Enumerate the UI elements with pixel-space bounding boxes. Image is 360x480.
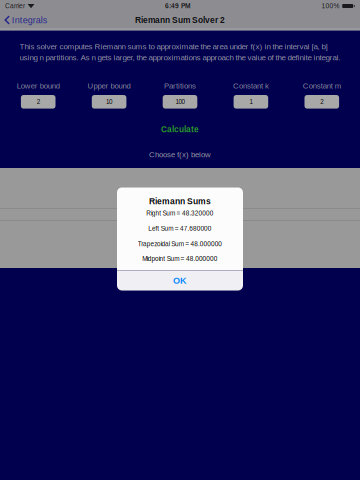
button[interactable]: Calculate	[140, 123, 220, 135]
staticText: 1	[249, 98, 252, 105]
staticText: This solver computes Riemann sums to app…	[19, 42, 340, 62]
staticText: Choose f(x) below	[149, 150, 211, 159]
button[interactable]: OK	[117, 270, 243, 291]
button[interactable]: 2	[304, 95, 339, 109]
staticText: Lower bound	[17, 81, 60, 90]
staticText: OK	[173, 275, 187, 285]
staticText: Integrals	[12, 15, 48, 25]
staticText: Constant k	[233, 81, 269, 90]
staticText: Partitions	[164, 81, 196, 90]
button[interactable]: 100	[163, 95, 197, 109]
staticText: 2	[37, 98, 40, 105]
staticText: Carrier	[5, 2, 25, 10]
staticText: Upper bound	[88, 81, 131, 90]
staticText: Left Sum = 47.680000	[148, 225, 212, 232]
button[interactable]: Integrals	[0, 11, 56, 29]
staticText: Riemann Sum Solver 2	[135, 15, 225, 25]
button[interactable]: 10	[92, 95, 126, 109]
staticText: 2	[320, 98, 323, 105]
staticText: Riemann Sums	[149, 196, 211, 206]
staticText: 100%	[321, 2, 339, 10]
staticText: Right Sum = 48.320000	[146, 210, 214, 217]
staticText: 10	[106, 98, 112, 105]
staticText: Calculate	[161, 125, 199, 134]
staticText: 6:49 PM	[165, 2, 191, 10]
staticText: 100	[175, 98, 184, 105]
staticText: Midpoint Sum = 48.000000	[142, 255, 218, 262]
staticText: Constant m	[303, 81, 341, 90]
staticText: Trapezoidal Sum = 48.000000	[138, 240, 222, 248]
button[interactable]: 1	[234, 95, 268, 109]
button[interactable]: 2	[21, 95, 55, 109]
